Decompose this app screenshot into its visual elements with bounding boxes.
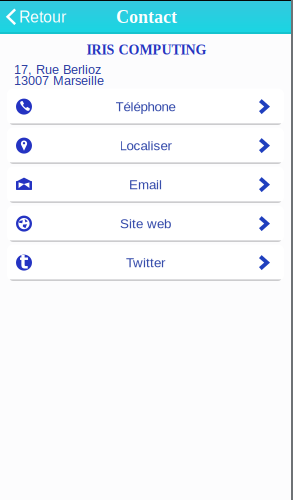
staticText: Contact [116, 7, 177, 27]
staticText: Retour [19, 8, 66, 26]
staticText: 17, Rue Berlioz [14, 62, 101, 77]
staticText: Localiser [119, 138, 171, 153]
staticText: t [19, 251, 28, 273]
button[interactable]: Email [7, 167, 284, 203]
button[interactable]: Retour [0, 2, 66, 32]
button[interactable]: Téléphone [7, 89, 284, 125]
staticText: Téléphone [115, 99, 175, 114]
staticText: Email [129, 177, 162, 192]
staticText: Twitter [126, 255, 165, 270]
button[interactable]: t [7, 245, 284, 281]
staticText: IRIS COMPUTING [86, 42, 206, 57]
button[interactable]: Site web [7, 206, 284, 242]
staticText: Site web [120, 216, 171, 231]
button[interactable]: Localiser [7, 128, 284, 164]
staticText: 13007 Marseille [14, 73, 104, 88]
